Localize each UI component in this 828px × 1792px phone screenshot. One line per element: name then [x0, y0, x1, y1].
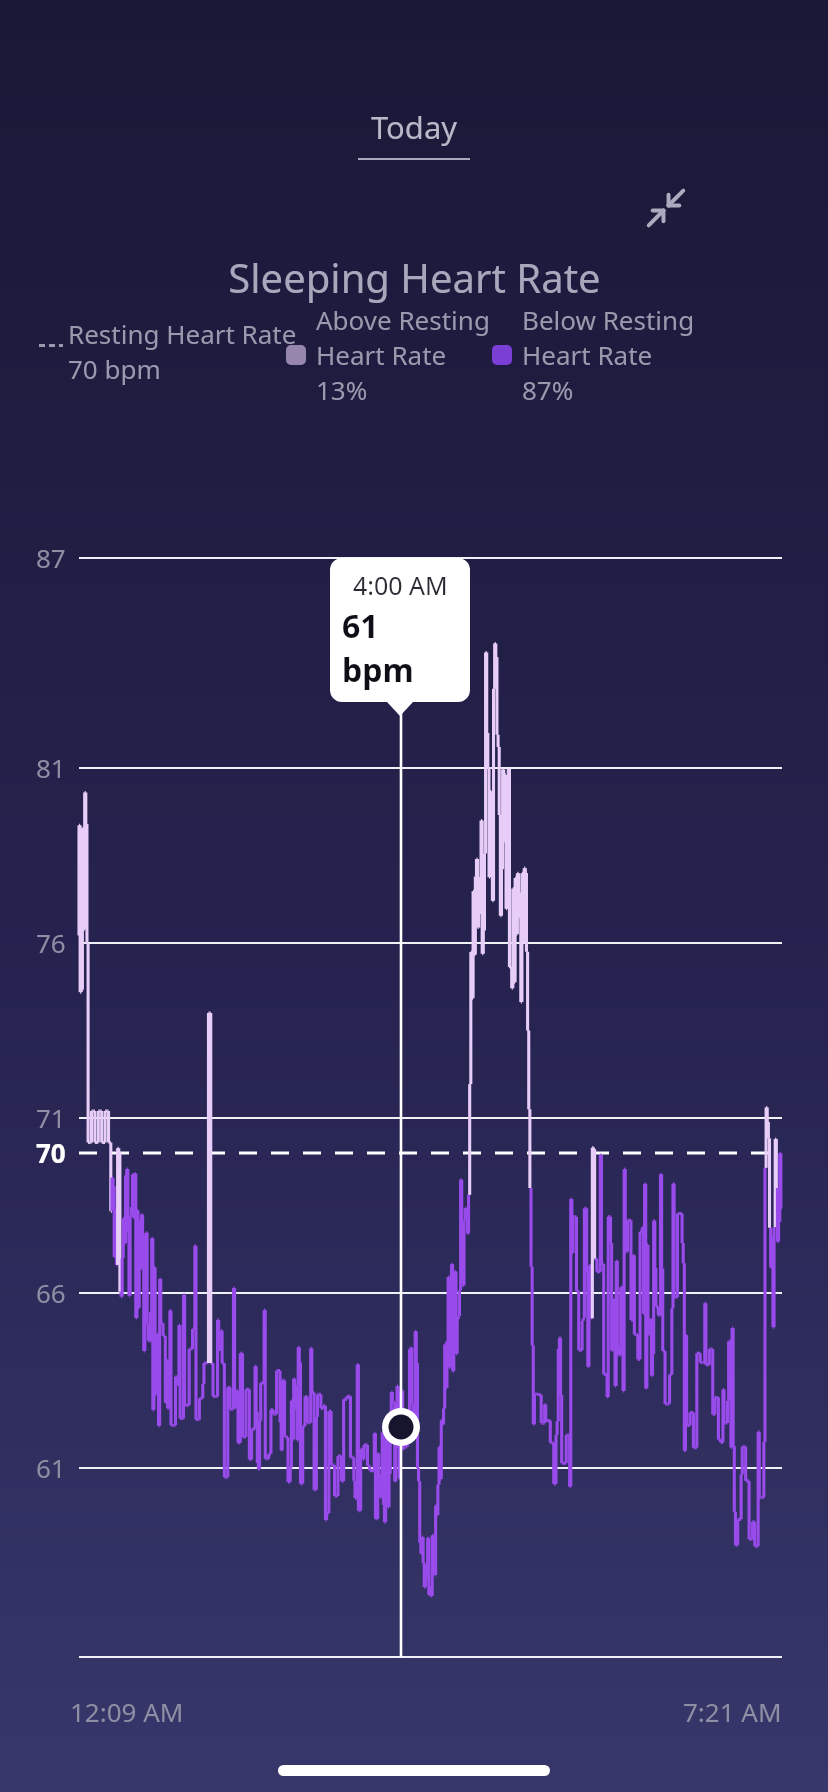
button[interactable]: Today — [346, 104, 482, 162]
staticText: 66 — [36, 1275, 66, 1310]
staticText: 81 — [36, 750, 66, 785]
staticText: 12:09 AM — [70, 1694, 184, 1729]
staticText: Sleeping Heart Rate — [228, 250, 601, 304]
staticText: 7:21 AM — [683, 1694, 782, 1729]
staticText: 70 bpm — [68, 351, 161, 386]
staticText: 87 — [36, 540, 66, 575]
staticText: 70 — [36, 1135, 66, 1170]
staticText: 71 — [36, 1100, 66, 1135]
staticText: 4:00 AM — [353, 568, 448, 602]
staticText: Resting Heart Rate — [68, 316, 297, 351]
staticText: 87% — [522, 372, 574, 407]
staticText: Heart Rate — [316, 337, 447, 372]
staticText: 13% — [316, 372, 368, 407]
staticText: 61 bpm — [342, 604, 458, 692]
staticText: Above Resting — [316, 302, 490, 337]
button[interactable]: 4:00 AM — [330, 558, 470, 702]
staticText: Below Resting — [522, 302, 695, 337]
button[interactable]: Collapse — [630, 172, 702, 244]
staticText: 61 — [36, 1450, 66, 1485]
staticText: 76 — [36, 925, 66, 960]
staticText: Heart Rate — [522, 337, 653, 372]
staticText: Today — [371, 106, 458, 148]
